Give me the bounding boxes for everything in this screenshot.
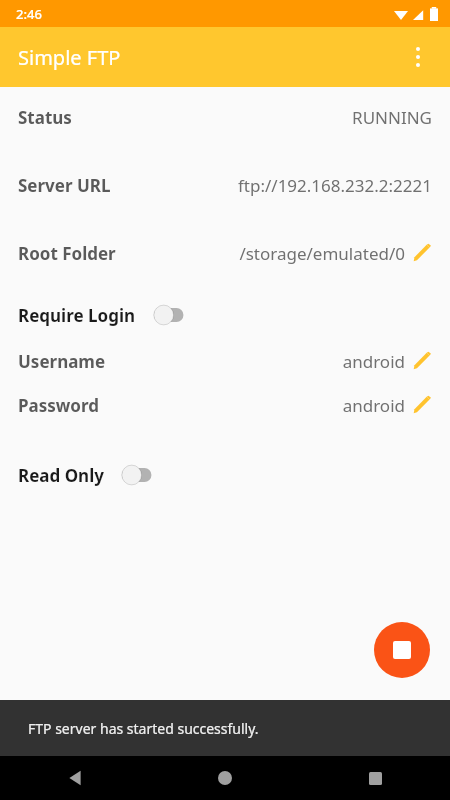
staticText: Require Login (18, 304, 136, 327)
staticText: Simple FTP (18, 44, 121, 71)
button[interactable]: Back (0, 756, 150, 800)
button[interactable]: Read Only toggle (118, 462, 156, 488)
staticText: 2:46 (16, 5, 42, 23)
button[interactable]: Username (0, 347, 450, 375)
button[interactable]: Root Folder (0, 239, 450, 267)
staticText: /storage/emulated/0 (239, 242, 405, 265)
button[interactable]: Require Login (0, 299, 450, 331)
staticText: Username (18, 350, 106, 373)
button[interactable]: Edit Root Folder (412, 243, 432, 263)
staticText: Status (18, 106, 72, 129)
staticText: Root Folder (18, 242, 116, 265)
staticText: android (342, 350, 405, 373)
staticText: Read Only (18, 464, 104, 487)
staticText: Password (18, 394, 99, 417)
staticText: ftp://192.168.232.2:2221 (237, 174, 432, 197)
button[interactable]: More options (394, 33, 442, 81)
button[interactable]: Password (0, 391, 450, 419)
staticText: RUNNING (352, 106, 432, 129)
button[interactable]: Read Only (0, 459, 450, 491)
staticText: android (342, 394, 405, 417)
button[interactable]: Edit Username (412, 351, 432, 371)
button[interactable]: Recent apps (300, 756, 450, 800)
button[interactable]: Stop server (374, 622, 430, 678)
button[interactable]: Home (150, 756, 300, 800)
staticText: FTP server has started successfully. (28, 719, 259, 738)
button[interactable]: Server URL (0, 171, 450, 199)
staticText: Server URL (18, 174, 111, 197)
button[interactable]: Require Login toggle (150, 302, 188, 328)
button[interactable]: Status (0, 103, 450, 131)
button[interactable]: FTP server has started successfully. (0, 700, 450, 756)
button[interactable]: Edit Password (412, 395, 432, 415)
